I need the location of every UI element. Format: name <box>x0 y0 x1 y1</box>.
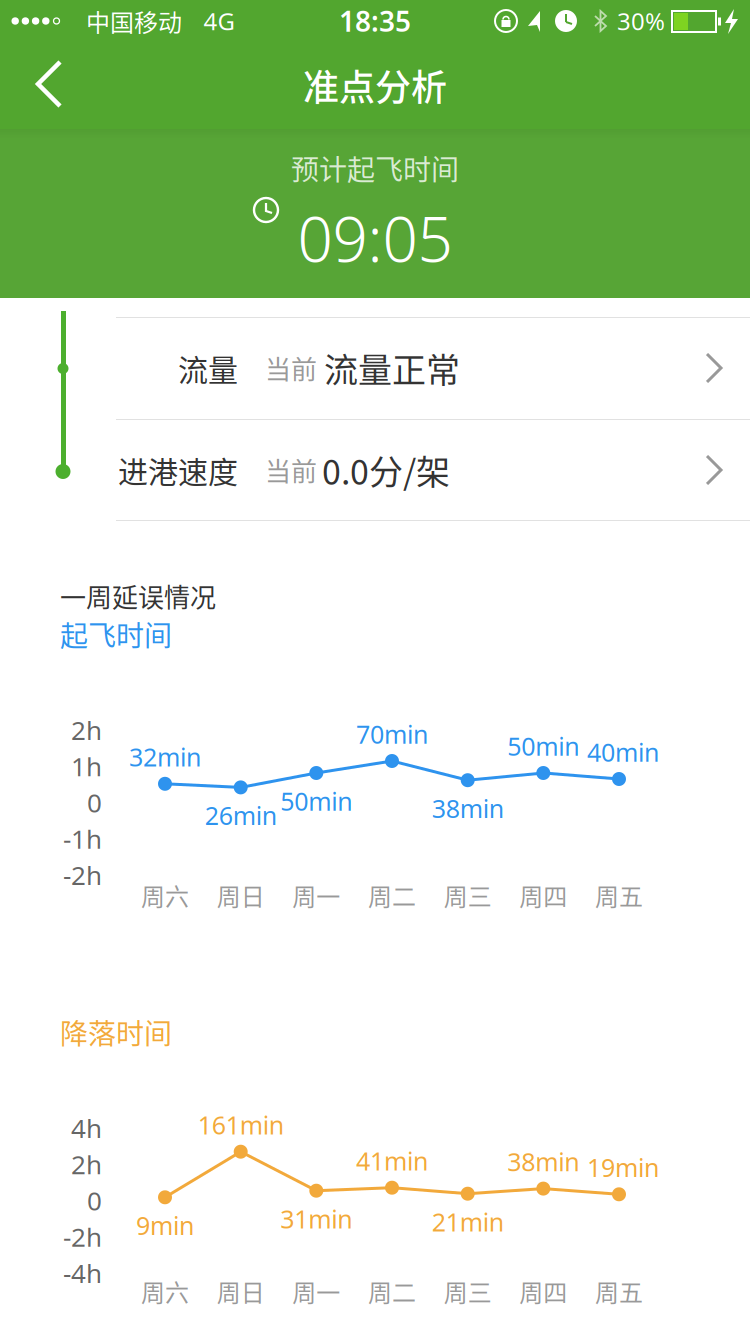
staticText: 周四 <box>519 878 567 912</box>
staticText: 32min <box>129 740 201 774</box>
staticText: 41min <box>356 1144 428 1178</box>
staticText: 流量 <box>178 346 238 390</box>
staticText: 2h <box>71 712 102 748</box>
staticText: 70min <box>356 717 428 751</box>
staticText: -2h <box>63 857 102 892</box>
staticText: 21min <box>432 1205 504 1239</box>
staticText: 起飞时间 <box>60 614 172 654</box>
staticText: 161min <box>198 1108 284 1142</box>
staticText: 周四 <box>519 1274 567 1308</box>
staticText: 周日 <box>217 878 265 912</box>
staticText: 周六 <box>141 1274 189 1308</box>
staticText: 38min <box>507 1145 579 1179</box>
button[interactable]: 进港速度 <box>113 419 750 521</box>
staticText: 26min <box>205 798 277 832</box>
staticText: 50min <box>280 784 352 818</box>
staticText: -1h <box>63 821 102 856</box>
staticText: 9min <box>136 1208 194 1242</box>
staticText: 中国移动 <box>86 4 182 38</box>
staticText: 周五 <box>595 878 643 912</box>
staticText: 一周延误情况 <box>60 577 216 615</box>
staticText: -2h <box>63 1219 102 1254</box>
staticText: 进港速度 <box>118 448 238 492</box>
staticText: 预计起飞时间 <box>291 148 459 188</box>
staticText: 周一 <box>292 878 340 912</box>
staticText: 4h <box>71 1110 102 1146</box>
staticText: 19min <box>587 1150 659 1184</box>
staticText: 周一 <box>292 1274 340 1308</box>
staticText: -4h <box>63 1255 102 1290</box>
staticText: 2h <box>71 1146 102 1182</box>
staticText: 0 <box>87 1183 102 1218</box>
staticText: 周六 <box>141 878 189 912</box>
staticText: 31min <box>280 1202 352 1236</box>
staticText: 0 <box>87 785 102 820</box>
staticText: 周五 <box>595 1274 643 1308</box>
staticText: 周二 <box>368 1274 416 1308</box>
staticText: 流量正常 <box>324 343 460 393</box>
staticText: 38min <box>432 791 504 825</box>
staticText: 1h <box>71 748 102 784</box>
staticText: 当前 <box>265 451 317 489</box>
staticText: 周三 <box>444 878 492 912</box>
staticText: 降落时间 <box>60 1012 172 1052</box>
staticText: 周三 <box>444 1274 492 1308</box>
staticText: 周日 <box>217 1274 265 1308</box>
staticText: 50min <box>507 729 579 763</box>
staticText: 当前 <box>265 349 317 387</box>
button[interactable]: 流量 <box>113 317 750 419</box>
staticText: 09:05 <box>297 196 452 280</box>
staticText: 30% <box>617 5 665 37</box>
staticText: 18:35 <box>339 2 411 40</box>
button[interactable]: 返回 <box>34 61 82 107</box>
staticText: 0.0分/架 <box>322 445 450 495</box>
button[interactable]: 起飞时间 <box>60 614 220 654</box>
button[interactable]: 降落时间 <box>60 1012 220 1052</box>
staticText: 4G <box>203 5 234 37</box>
staticText: 准点分析 <box>303 59 447 111</box>
staticText: 40min <box>587 735 659 769</box>
staticText: 周二 <box>368 878 416 912</box>
